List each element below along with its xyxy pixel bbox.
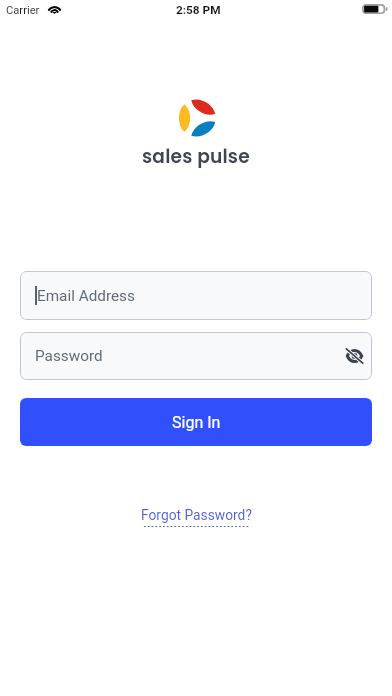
staticText: 2:58 PM	[176, 3, 221, 17]
staticText: Forgot Password?	[141, 507, 252, 523]
staticText: Email Address	[37, 287, 135, 305]
button[interactable]: Forgot Password?	[135, 505, 258, 529]
button[interactable]: Email Address	[20, 271, 372, 320]
staticText: sales pulse	[142, 143, 250, 169]
button[interactable]: Show password	[339, 341, 369, 371]
staticText: Sign In	[172, 413, 221, 432]
staticText: Password	[35, 347, 103, 365]
button[interactable]: Sign In	[20, 398, 372, 446]
button[interactable]: Password	[20, 332, 372, 380]
staticText: Carrier	[6, 4, 40, 17]
